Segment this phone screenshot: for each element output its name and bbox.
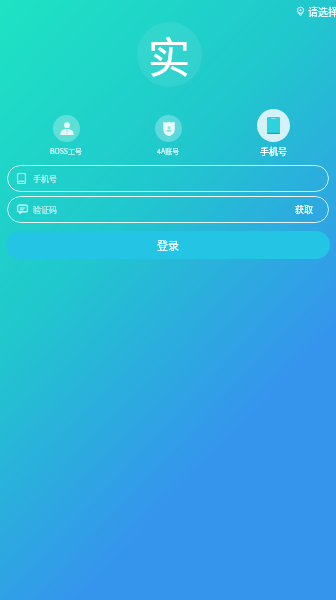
button[interactable]: BOSS工号 bbox=[50, 115, 83, 156]
staticText: 验证码 bbox=[33, 204, 57, 216]
button[interactable]: 登录 bbox=[6, 231, 330, 259]
button[interactable]: 4A账号 bbox=[155, 115, 182, 156]
button[interactable]: 获取 bbox=[283, 198, 329, 221]
other: 选择城市 bbox=[297, 7, 304, 16]
button[interactable]: 选择城市 bbox=[297, 4, 336, 18]
staticText: 获取 bbox=[295, 203, 314, 216]
staticText: 手机号 bbox=[260, 145, 288, 158]
staticText: 4A账号 bbox=[157, 146, 180, 156]
staticText: BOSS工号 bbox=[50, 146, 83, 156]
button[interactable]: 手机号 bbox=[7, 165, 329, 192]
staticText: 手机号 bbox=[33, 173, 57, 185]
staticText: 实 bbox=[148, 24, 191, 85]
button[interactable]: 手机号 bbox=[257, 109, 290, 158]
staticText: 登录 bbox=[157, 237, 179, 253]
staticText: 请选择 bbox=[308, 4, 336, 18]
